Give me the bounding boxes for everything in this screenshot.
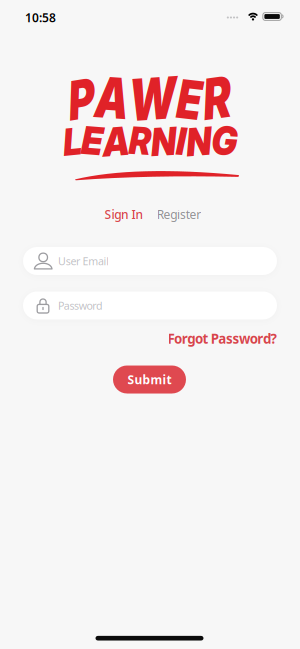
staticText: R <box>219 64 256 132</box>
staticText: A <box>77 63 122 132</box>
button[interactable]: Password <box>23 291 277 319</box>
staticText: N <box>151 118 180 165</box>
staticText: Sign In <box>105 206 143 222</box>
button[interactable]: Submit <box>113 365 186 393</box>
staticText: I <box>180 118 191 164</box>
button[interactable]: Register <box>157 206 201 222</box>
staticText: E <box>72 117 96 164</box>
staticText: Password <box>58 298 103 313</box>
staticText: 10:58 <box>25 9 56 25</box>
staticText: W <box>122 63 185 134</box>
staticText: User Email <box>58 254 109 268</box>
button[interactable]: Forgot Password? <box>167 330 276 347</box>
staticText: G <box>220 117 249 164</box>
button[interactable]: Sign In <box>105 206 143 222</box>
staticText: Submit <box>127 371 171 387</box>
staticText: Register <box>157 206 201 222</box>
staticText: E <box>185 67 219 132</box>
staticText: R <box>126 117 151 163</box>
staticText: P <box>42 66 77 132</box>
staticText: Forgot Password? <box>167 330 276 347</box>
staticText: L <box>51 119 72 164</box>
staticText: N <box>191 118 220 165</box>
staticText: A <box>96 118 126 165</box>
button[interactable]: User Email <box>23 247 277 275</box>
